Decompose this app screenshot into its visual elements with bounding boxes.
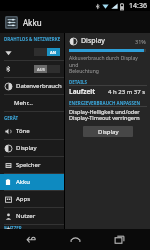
button[interactable]: Nutzer xyxy=(0,208,64,224)
staticText: AN xyxy=(50,50,57,55)
button[interactable]: Akku xyxy=(0,174,64,190)
staticText: 4 h 23 m 37 s xyxy=(108,88,146,96)
button[interactable]: Apps xyxy=(0,191,64,207)
staticText: Display xyxy=(16,144,37,152)
staticText: Nutzer xyxy=(16,212,36,220)
staticText: Töne xyxy=(16,127,30,135)
staticText: Datenverbrauch xyxy=(16,82,62,90)
button[interactable]: AN xyxy=(0,44,64,60)
staticText: Display xyxy=(81,36,105,46)
staticText: ENERGIEVERBRAUCH ANPASSEN xyxy=(69,100,141,106)
staticText: AUS xyxy=(37,67,45,72)
staticText: NUTZER xyxy=(4,225,22,229)
staticText: Speicher xyxy=(16,161,41,169)
button[interactable]: Home xyxy=(62,229,88,250)
button[interactable]: AUS xyxy=(0,61,64,77)
button[interactable]: Recent apps xyxy=(106,229,132,250)
staticText: 14:36 xyxy=(129,1,147,11)
staticText: Display-Helligkeit und/oder Display-Time… xyxy=(69,108,140,122)
staticText: Apps xyxy=(16,195,31,203)
staticText: 31% xyxy=(135,38,146,45)
button[interactable]: Mehr... xyxy=(0,95,64,111)
staticText: Akkuverbrauch durch Display und Beleucht… xyxy=(69,55,146,75)
staticText: DETAILS xyxy=(69,79,87,85)
button[interactable]: Töne xyxy=(0,123,64,139)
staticText: Display xyxy=(98,128,119,136)
button[interactable]: Back xyxy=(18,229,44,250)
button[interactable]: Display xyxy=(83,126,133,137)
button[interactable]: Display xyxy=(0,140,64,156)
staticText: Akku xyxy=(16,178,30,186)
staticText: Akku xyxy=(23,17,42,28)
staticText: Laufzeit xyxy=(69,87,96,96)
staticText: GERÄT xyxy=(4,115,19,121)
button[interactable]: Speicher xyxy=(0,157,64,173)
button[interactable]: Akku xyxy=(0,11,150,33)
staticText: Mehr... xyxy=(14,99,33,107)
button[interactable]: Datenverbrauch xyxy=(0,78,64,94)
staticText: DRAHTLOS & NETZWERKE xyxy=(4,36,61,42)
